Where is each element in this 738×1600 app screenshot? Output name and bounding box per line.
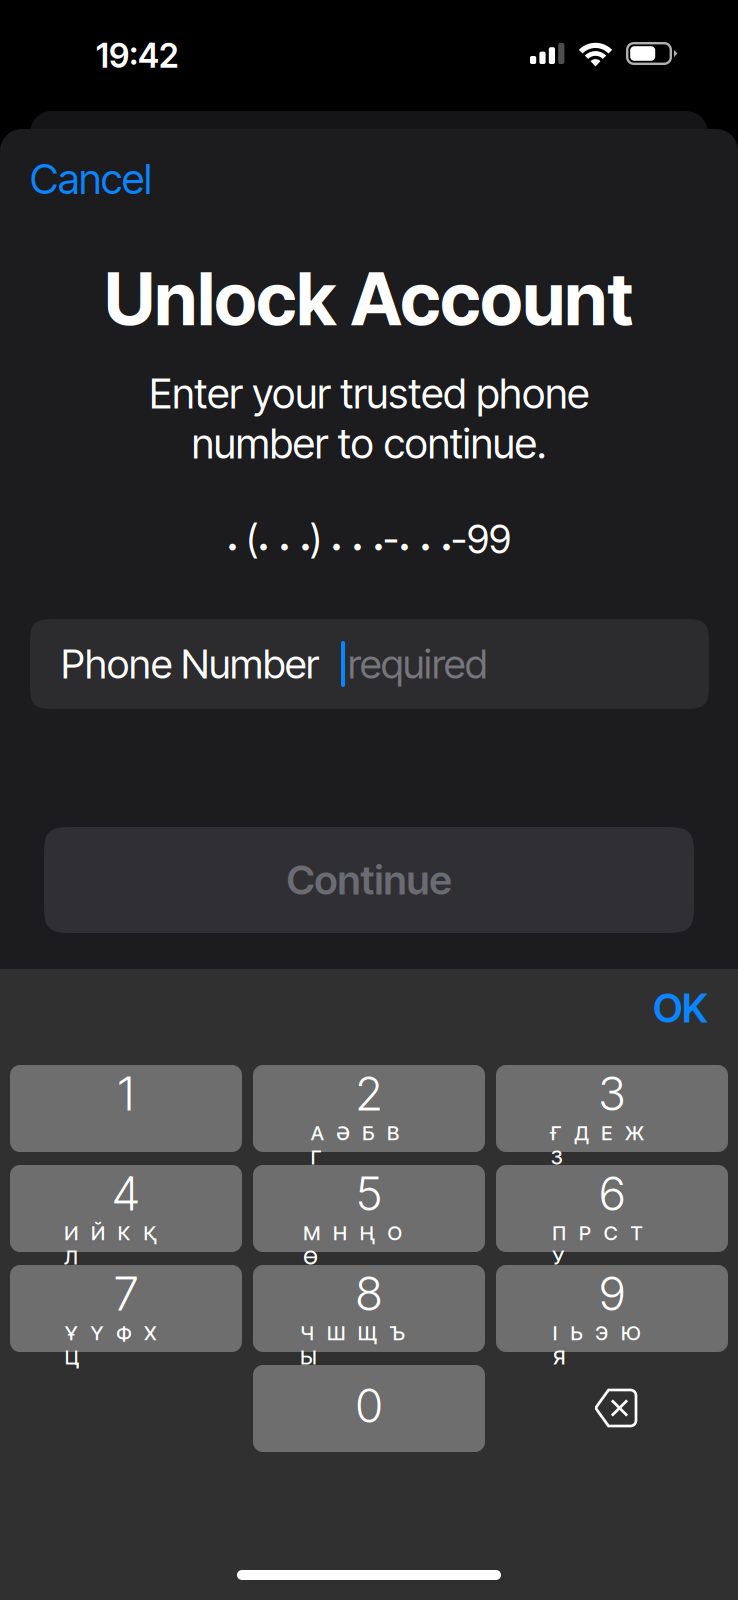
staticText: Unlock Account	[104, 255, 633, 342]
button[interactable]: 9	[496, 1265, 728, 1352]
staticText: Ұ Ү Ф Х Ц	[65, 1321, 183, 1345]
staticText: Enter your trusted phone number to conti…	[149, 368, 589, 468]
button[interactable]: 5	[253, 1165, 485, 1252]
staticText: Phone Number	[61, 640, 319, 688]
staticText: OK	[653, 984, 708, 1032]
button[interactable]: 8	[253, 1265, 485, 1352]
staticText: І Ь Э Ю Я	[553, 1321, 667, 1345]
button[interactable]: 4	[10, 1165, 242, 1252]
staticText: 5	[356, 1165, 382, 1222]
staticText: Continue	[286, 856, 451, 904]
staticText: 2	[355, 1065, 382, 1122]
staticText: Ғ Д Е Ж З	[551, 1121, 669, 1145]
button[interactable]: 2	[253, 1065, 485, 1152]
staticText: А Ә Б В Г	[311, 1121, 423, 1145]
button[interactable]: 6	[496, 1165, 728, 1252]
staticText: 6	[599, 1165, 625, 1222]
button[interactable]: 3	[496, 1065, 728, 1152]
button[interactable]: Delete	[496, 1365, 728, 1452]
staticText: М Н Ң О Ө	[303, 1221, 430, 1245]
staticText: П Р С Т У	[552, 1221, 667, 1245]
button[interactable]: 7	[10, 1265, 242, 1352]
button[interactable]: Continue	[44, 827, 694, 933]
staticText: required	[348, 640, 487, 688]
staticText: • (• • •) • • •-• • •-99	[227, 517, 511, 562]
staticText: 4	[112, 1165, 140, 1222]
staticText: 7	[114, 1265, 138, 1322]
staticText: 9	[599, 1265, 625, 1322]
staticText: И Й К Қ Л	[64, 1221, 183, 1245]
button[interactable]: OK	[550, 983, 708, 1033]
staticText: 0	[355, 1377, 382, 1434]
staticText: Ч Ш Щ Ъ Ы	[300, 1321, 433, 1345]
staticText: 1	[117, 1065, 134, 1122]
staticText: Cancel	[30, 154, 152, 204]
button[interactable]: 1	[10, 1065, 242, 1152]
staticText: 19:42	[96, 35, 178, 76]
button[interactable]: Cancel	[30, 154, 210, 204]
button[interactable]: 0	[253, 1365, 485, 1452]
staticText: 8	[355, 1265, 382, 1322]
staticText: 3	[598, 1065, 626, 1122]
